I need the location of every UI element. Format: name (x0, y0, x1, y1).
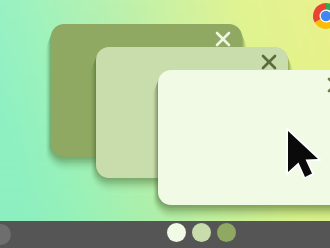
button[interactable]: Chrome (313, 3, 330, 29)
button[interactable]: Close Window 1 (212, 28, 234, 50)
button[interactable]: Window 1 (51, 24, 242, 157)
button[interactable]: Close Window 3 (324, 74, 330, 96)
button[interactable]: Window 3 task (167, 223, 186, 242)
button[interactable]: Window 3 (158, 70, 330, 205)
button[interactable]: Window 1 task (217, 223, 236, 242)
button[interactable]: Window 2 (96, 47, 288, 178)
button[interactable]: Close Window 2 (258, 51, 280, 73)
button[interactable]: Apps (0, 224, 11, 245)
button[interactable]: Window 2 task (192, 223, 211, 242)
